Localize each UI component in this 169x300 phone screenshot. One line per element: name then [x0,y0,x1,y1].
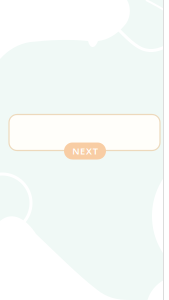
staticText: NEXT [72,145,98,157]
button[interactable]: NEXT [64,142,106,159]
